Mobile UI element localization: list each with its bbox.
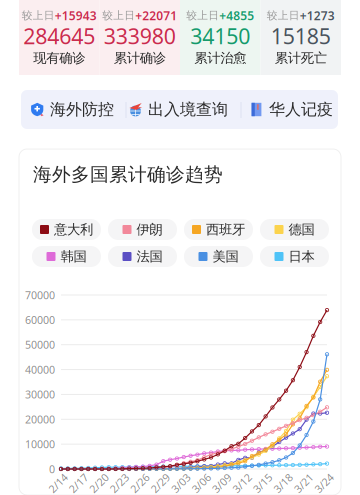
button[interactable]: 出入境查询	[128, 90, 228, 129]
staticText: 3/09	[211, 476, 233, 490]
staticText: +4855	[219, 7, 254, 23]
button[interactable]: 韩国	[32, 246, 101, 267]
staticText: 15185	[271, 22, 331, 50]
staticText: 2/20	[88, 476, 110, 490]
staticText: 3/03	[170, 476, 192, 490]
staticText: 2/26	[129, 476, 151, 490]
staticText: 40000	[25, 362, 55, 377]
staticText: 3/06	[190, 476, 212, 490]
staticText: 60000	[25, 313, 55, 327]
staticText: 较上日	[102, 9, 135, 22]
staticText: 较上日	[186, 9, 219, 22]
button[interactable]: 西班牙	[184, 219, 253, 240]
button[interactable]: 德国	[260, 219, 329, 240]
staticText: 3/18	[272, 476, 294, 490]
staticText: +15943	[55, 7, 97, 23]
staticText: 284645	[23, 22, 95, 50]
staticText: 2/17	[67, 476, 89, 490]
staticText: 0	[49, 462, 55, 476]
staticText: 韩国	[60, 248, 86, 265]
button[interactable]: 华人记疫	[249, 90, 333, 129]
staticText: +22071	[135, 7, 177, 23]
staticText: 3/21	[292, 476, 314, 490]
staticText: 伊朗	[136, 221, 162, 238]
staticText: 34150	[190, 22, 250, 50]
staticText: 日本	[288, 248, 314, 265]
staticText: 3/12	[231, 476, 253, 490]
staticText: 意大利	[54, 221, 93, 238]
staticText: 70000	[25, 288, 55, 302]
staticText: 海外防控	[50, 100, 114, 119]
staticText: 较上日	[267, 9, 300, 22]
staticText: 法国	[136, 248, 162, 265]
staticText: 较上日	[22, 9, 55, 22]
staticText: 30000	[25, 387, 55, 401]
button[interactable]: 法国	[108, 246, 177, 267]
staticText: 累计治愈	[194, 50, 246, 66]
button[interactable]: 海外防控	[30, 90, 114, 129]
staticText: 3/15	[252, 476, 274, 490]
staticText: 现有确诊	[33, 50, 85, 66]
staticText: 出入境查询	[148, 100, 228, 119]
staticText: +1273	[300, 7, 335, 23]
staticText: 累计死亡	[275, 50, 327, 66]
staticText: 2/14	[47, 476, 69, 490]
staticText: 美国	[212, 248, 238, 265]
button[interactable]: 伊朗	[108, 219, 177, 240]
staticText: 10000	[25, 437, 55, 451]
button[interactable]: 美国	[184, 246, 253, 267]
staticText: 333980	[104, 22, 176, 50]
staticText: 累计确诊	[114, 50, 166, 66]
staticText: 20000	[25, 412, 55, 426]
staticText: 华人记疫	[269, 100, 333, 119]
button[interactable]: 日本	[260, 246, 329, 267]
button[interactable]: 意大利	[32, 219, 101, 240]
staticText: 西班牙	[206, 221, 245, 238]
staticText: 2/23	[108, 476, 130, 490]
staticText: 海外多国累计确诊趋势	[33, 163, 223, 186]
staticText: 2/29	[149, 476, 171, 490]
staticText: 3/24	[313, 476, 335, 490]
staticText: 50000	[25, 338, 55, 352]
staticText: 德国	[288, 221, 314, 238]
